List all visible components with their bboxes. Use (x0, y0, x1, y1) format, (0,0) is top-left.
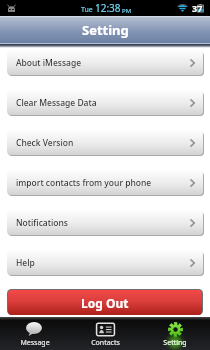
button[interactable]: Message (0, 317, 70, 350)
button[interactable]: Setting (140, 317, 210, 350)
staticText: Notifications (16, 217, 68, 229)
staticText: Contacts (91, 338, 120, 348)
button[interactable]: About iMessage (7, 50, 203, 75)
staticText: Check Version (16, 137, 74, 149)
button[interactable]: Help (7, 250, 203, 275)
staticText: Setting (82, 21, 129, 39)
staticText: Log Out (81, 295, 129, 311)
staticText: import contacts from your phone (16, 177, 152, 189)
button[interactable]: Notifications (7, 210, 203, 235)
staticText: Message (20, 338, 50, 348)
button[interactable]: Clear Message Data (7, 90, 203, 115)
staticText: Tue (81, 5, 93, 15)
staticText: 12:38 (95, 1, 121, 15)
button[interactable]: Log Out (8, 290, 202, 315)
button[interactable]: Check Version (7, 130, 203, 155)
button[interactable]: Contacts (70, 317, 140, 350)
staticText: Help (16, 257, 35, 269)
staticText: About iMessage (16, 57, 82, 69)
button[interactable]: import contacts from your phone (7, 170, 203, 195)
staticText: Setting (163, 338, 187, 348)
staticText: PM (122, 7, 132, 15)
staticText: Clear Message Data (16, 97, 97, 109)
staticText: 37 (192, 2, 203, 14)
